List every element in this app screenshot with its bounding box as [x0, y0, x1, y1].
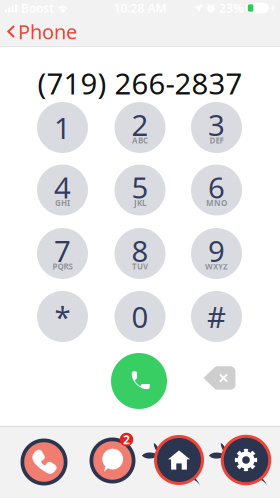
- staticText: 0: [131, 297, 148, 336]
- staticText: (719) 266-2837: [37, 63, 242, 102]
- staticText: #: [207, 297, 226, 336]
- staticText: 3: [208, 105, 225, 144]
- staticText: TUV: [132, 261, 148, 272]
- staticText: GHI: [55, 198, 70, 208]
- button[interactable]: 2: [114, 102, 165, 153]
- button[interactable]: Messages: [84, 432, 140, 488]
- staticText: Phone: [18, 18, 77, 45]
- staticText: Boost: [21, 0, 54, 16]
- button[interactable]: Keypad: [16, 434, 72, 490]
- staticText: WXYZ: [205, 261, 228, 272]
- staticText: MNO: [206, 198, 227, 208]
- staticText: DEF: [209, 135, 223, 146]
- staticText: ABC: [132, 135, 148, 146]
- button[interactable]: 6: [191, 164, 242, 215]
- button[interactable]: 7: [37, 228, 88, 279]
- button[interactable]: Call: [111, 353, 167, 409]
- button[interactable]: 0: [114, 291, 165, 342]
- staticText: 7: [54, 231, 71, 270]
- staticText: 10:28 AM: [113, 0, 166, 16]
- staticText: 6: [208, 167, 225, 206]
- staticText: 2: [131, 105, 148, 144]
- staticText: JKL: [134, 198, 146, 208]
- button[interactable]: 1: [37, 102, 88, 153]
- staticText: 8: [131, 231, 148, 270]
- staticText: 4: [54, 167, 71, 206]
- button[interactable]: 4: [37, 164, 88, 215]
- button[interactable]: Delete: [203, 366, 235, 390]
- button[interactable]: 3: [191, 102, 242, 153]
- staticText: 9: [208, 231, 225, 270]
- button[interactable]: Home: [151, 432, 207, 488]
- button[interactable]: 8: [114, 228, 165, 279]
- button[interactable]: 5: [114, 164, 165, 215]
- button[interactable]: Settings: [218, 432, 274, 488]
- staticText: *: [54, 297, 70, 336]
- button[interactable]: 9: [191, 228, 242, 279]
- button[interactable]: #: [191, 291, 242, 342]
- staticText: 23%: [219, 0, 244, 16]
- staticText: PQRS: [52, 261, 72, 272]
- staticText: 1: [54, 108, 71, 147]
- button[interactable]: *: [37, 291, 88, 342]
- staticText: 2: [123, 431, 130, 447]
- button[interactable]: Phone: [0, 11, 85, 52]
- staticText: 5: [131, 167, 148, 206]
